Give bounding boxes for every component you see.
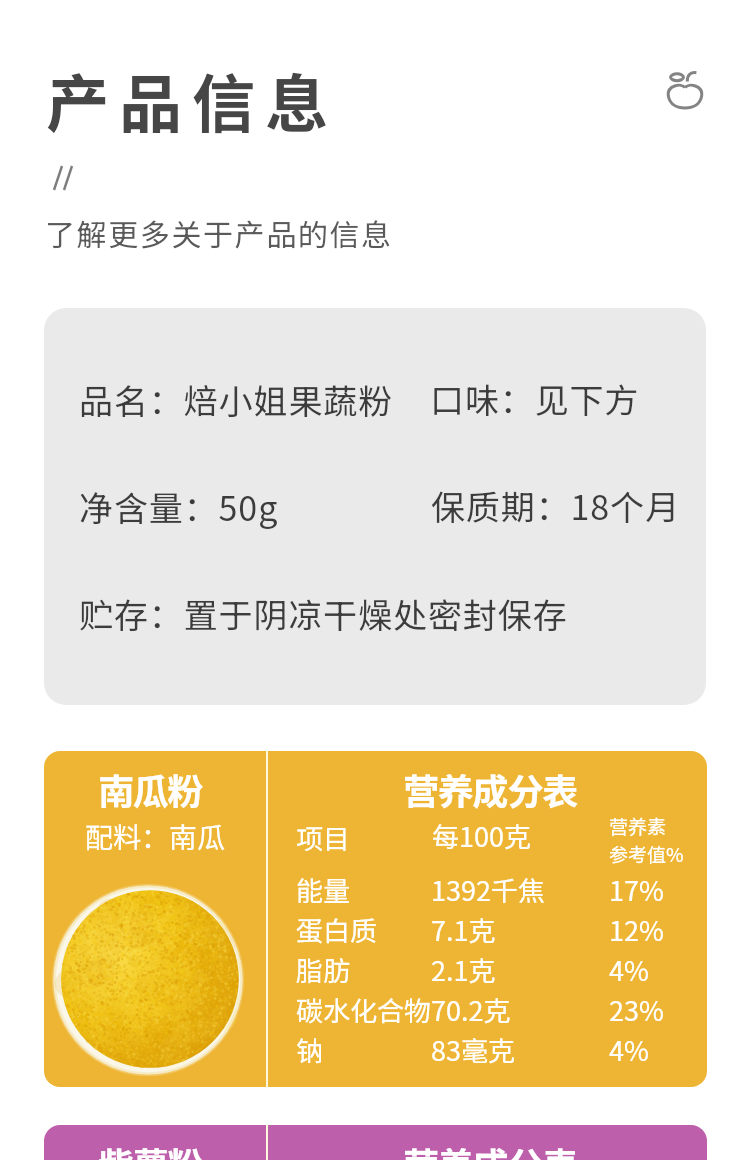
staticText: 2.1克: [431, 950, 496, 989]
staticText: 贮存：置于阴凉干燥处密封保存: [79, 589, 568, 638]
staticText: 营养成分表: [403, 1137, 578, 1160]
staticText: 每100克: [432, 816, 531, 855]
staticText: 了解更多关于产品的信息: [45, 211, 393, 254]
button[interactable]: 贮存：置于阴凉干燥处密封保存: [79, 589, 568, 638]
staticText: 1392千焦: [431, 870, 545, 909]
button[interactable]: 品名：焙小姐果蔬粉: [79, 375, 394, 424]
button[interactable]: 口味：见下方: [430, 374, 640, 423]
button[interactable]: Product category: [666, 70, 704, 108]
staticText: 70.2克: [431, 990, 511, 1029]
staticText: 营养素: [609, 812, 667, 840]
staticText: 南瓜粉: [98, 763, 203, 815]
staticText: 蛋白质: [296, 910, 377, 949]
staticText: 产品信息: [46, 54, 338, 145]
staticText: 4%: [609, 1030, 649, 1069]
staticText: 项目: [296, 818, 350, 857]
staticText: 12%: [609, 910, 664, 949]
staticText: 碳水化合物: [296, 990, 431, 1029]
button[interactable]: 净含量：50g: [79, 482, 279, 531]
button[interactable]: 南瓜粉: [44, 751, 707, 1087]
staticText: 脂肪: [296, 950, 350, 989]
staticText: 营养成分表: [403, 763, 578, 815]
staticText: 7.1克: [431, 910, 496, 949]
button[interactable]: 保质期：18个月: [431, 481, 680, 530]
staticText: 保质期：18个月: [431, 481, 680, 530]
staticText: 净含量：50g: [79, 482, 279, 531]
staticText: 17%: [609, 870, 664, 909]
button[interactable]: 品名：焙小姐果蔬粉: [44, 308, 706, 705]
staticText: 配料：南瓜: [85, 816, 226, 857]
staticText: 83毫克: [431, 1030, 515, 1069]
staticText: 紫薯粉: [98, 1137, 203, 1160]
staticText: 4%: [609, 950, 649, 989]
staticText: 参考值%: [609, 840, 684, 868]
staticText: 钠: [296, 1030, 323, 1069]
button[interactable]: 紫薯粉: [44, 1125, 707, 1160]
staticText: 23%: [609, 990, 664, 1029]
staticText: 品名：焙小姐果蔬粉: [79, 375, 394, 424]
staticText: 口味：见下方: [430, 374, 640, 423]
staticText: 能量: [296, 870, 350, 909]
